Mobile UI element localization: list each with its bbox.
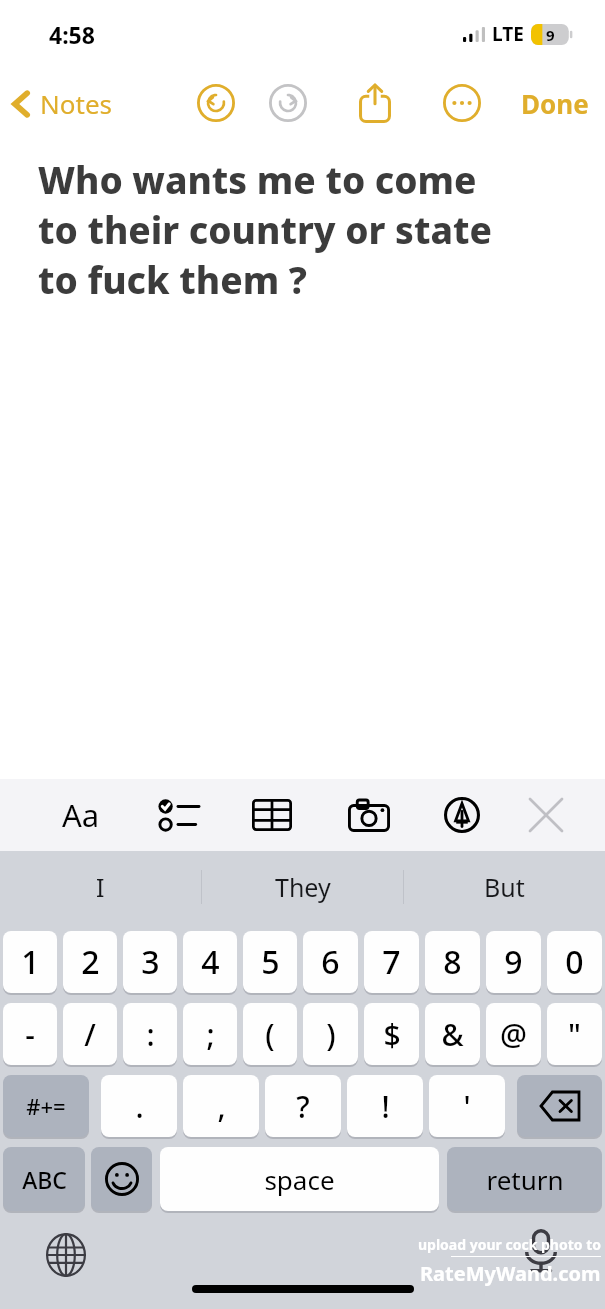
staticText: But [484, 870, 525, 904]
button[interactable]: I [0, 851, 201, 923]
staticText: upload your cock photo to [418, 1235, 601, 1254]
staticText: 9 [546, 25, 555, 45]
button[interactable]: Switch keyboard [40, 1229, 92, 1281]
staticText: 4 [201, 940, 220, 984]
staticText: $ [383, 1014, 401, 1055]
button[interactable]: 8 [425, 931, 480, 993]
staticText: They [275, 870, 331, 904]
button[interactable]: #+= [3, 1075, 89, 1137]
staticText: ; [206, 1014, 215, 1055]
staticText: / [84, 1014, 96, 1055]
staticText: ? [296, 1086, 310, 1127]
staticText: 9 [504, 940, 523, 984]
button[interactable]: " [547, 1003, 602, 1065]
staticText: : [146, 1014, 155, 1055]
staticText: RateMyWand.com [420, 1260, 601, 1287]
staticText: I [96, 870, 105, 904]
button[interactable]: 2 [63, 931, 117, 993]
staticText: - [25, 1014, 35, 1055]
staticText: return [486, 1162, 564, 1197]
staticText: 5 [261, 940, 280, 984]
button[interactable]: 4 [183, 931, 237, 993]
button[interactable]: ' [429, 1075, 505, 1137]
button[interactable]: Done [521, 86, 589, 121]
staticText: & [441, 1014, 464, 1055]
button[interactable]: Camera [343, 789, 395, 841]
button[interactable]: 5 [243, 931, 297, 993]
staticText: to fuck them ? [38, 254, 307, 304]
button[interactable]: return [447, 1147, 602, 1211]
staticText: 4:58 [49, 19, 95, 50]
button[interactable]: Close keyboard [520, 789, 572, 841]
staticText: Notes [40, 86, 112, 121]
button[interactable]: Delete [517, 1075, 602, 1137]
button[interactable]: . [101, 1075, 177, 1137]
staticText: ( [265, 1014, 275, 1055]
button[interactable]: ( [243, 1003, 297, 1065]
button[interactable]: ABC [3, 1147, 85, 1211]
button[interactable]: Table [246, 789, 298, 841]
staticText: 0 [565, 940, 584, 984]
staticText: Who wants me to come [38, 154, 477, 204]
button[interactable]: , [183, 1075, 259, 1137]
button[interactable]: More [439, 80, 485, 126]
button[interactable]: / [63, 1003, 117, 1065]
button[interactable]: 3 [123, 931, 177, 993]
button[interactable]: 7 [364, 931, 419, 993]
button[interactable]: Redo [265, 80, 311, 126]
button[interactable]: $ [364, 1003, 419, 1065]
button[interactable]: 6 [303, 931, 358, 993]
button[interactable]: 1 [3, 931, 57, 993]
button[interactable]: : [123, 1003, 177, 1065]
button[interactable]: Share [352, 80, 398, 126]
staticText: @ [500, 1014, 527, 1055]
staticText: 2 [81, 940, 100, 984]
button[interactable]: @ [486, 1003, 541, 1065]
staticText: 6 [321, 940, 340, 984]
button[interactable]: They [202, 851, 403, 923]
button[interactable]: Text format [55, 789, 107, 841]
staticText: , [217, 1086, 226, 1127]
staticText: Aa [62, 794, 100, 836]
button[interactable]: ; [183, 1003, 237, 1065]
staticText: ABC [22, 1164, 67, 1195]
staticText: #+= [26, 1091, 66, 1121]
staticText: 3 [141, 940, 160, 984]
button[interactable]: Undo [193, 80, 239, 126]
button[interactable]: ! [347, 1075, 423, 1137]
staticText: 1 [21, 940, 40, 984]
button[interactable]: 0 [547, 931, 602, 993]
staticText: 8 [443, 940, 462, 984]
button[interactable]: ? [265, 1075, 341, 1137]
button[interactable]: Dictation [515, 1225, 567, 1277]
button[interactable]: 9 [486, 931, 541, 993]
button[interactable]: & [425, 1003, 480, 1065]
staticText: space [264, 1162, 335, 1197]
staticText: ) [326, 1014, 336, 1055]
button[interactable]: ) [303, 1003, 358, 1065]
staticText: ' [463, 1086, 471, 1127]
button[interactable]: Notes [10, 86, 112, 121]
button[interactable]: Markup [436, 789, 488, 841]
staticText: . [135, 1086, 144, 1127]
button[interactable]: Checklist [152, 789, 204, 841]
button[interactable]: Emoji [91, 1147, 152, 1211]
button[interactable]: space [160, 1147, 439, 1211]
button[interactable]: - [3, 1003, 57, 1065]
staticText: LTE [492, 21, 524, 47]
button[interactable]: But [404, 851, 605, 923]
staticText: to their country or state [38, 204, 492, 254]
staticText: ! [381, 1086, 390, 1127]
staticText: " [568, 1014, 581, 1055]
staticText: 7 [382, 940, 401, 984]
